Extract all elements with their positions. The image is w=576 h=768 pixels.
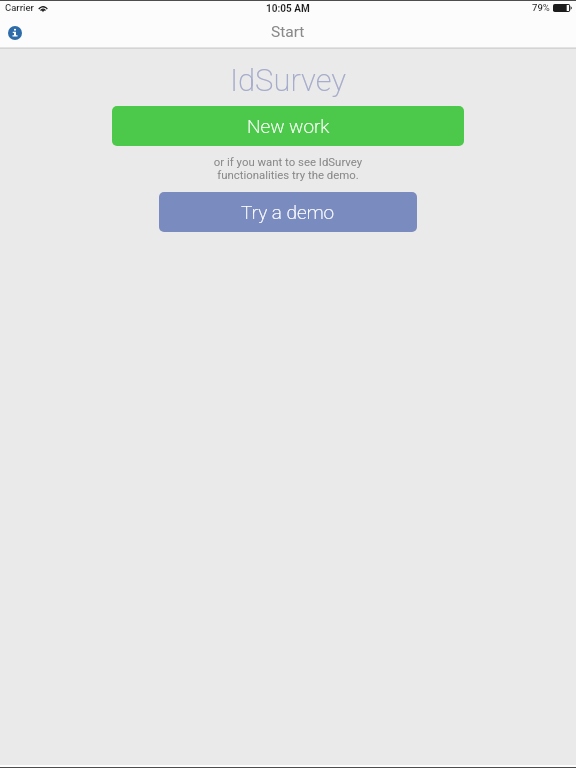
staticText: 10:05 AM <box>266 3 310 15</box>
button[interactable]: Info <box>4 22 26 44</box>
staticText: or if you want to see IdSurvey functiona… <box>0 155 576 182</box>
staticText: Try a demo <box>241 201 335 223</box>
staticText: IdSurvey <box>0 62 576 98</box>
staticText: New work <box>247 115 330 137</box>
staticText: 79% <box>532 2 550 13</box>
button[interactable]: New work <box>112 106 464 146</box>
staticText: Start <box>271 23 305 41</box>
button[interactable]: Try a demo <box>159 192 417 232</box>
staticText: Carrier <box>5 2 34 13</box>
